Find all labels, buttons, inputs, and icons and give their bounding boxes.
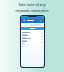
button[interactable] xyxy=(21,38,44,41)
staticText: Take note of any xyxy=(18,2,46,7)
button[interactable] xyxy=(21,27,44,30)
button[interactable] xyxy=(21,35,44,38)
button[interactable] xyxy=(21,41,44,44)
button[interactable]: Menu xyxy=(23,19,26,22)
staticText: network connection xyxy=(15,8,49,13)
button[interactable]: Search xyxy=(40,20,42,22)
button[interactable] xyxy=(21,32,44,35)
